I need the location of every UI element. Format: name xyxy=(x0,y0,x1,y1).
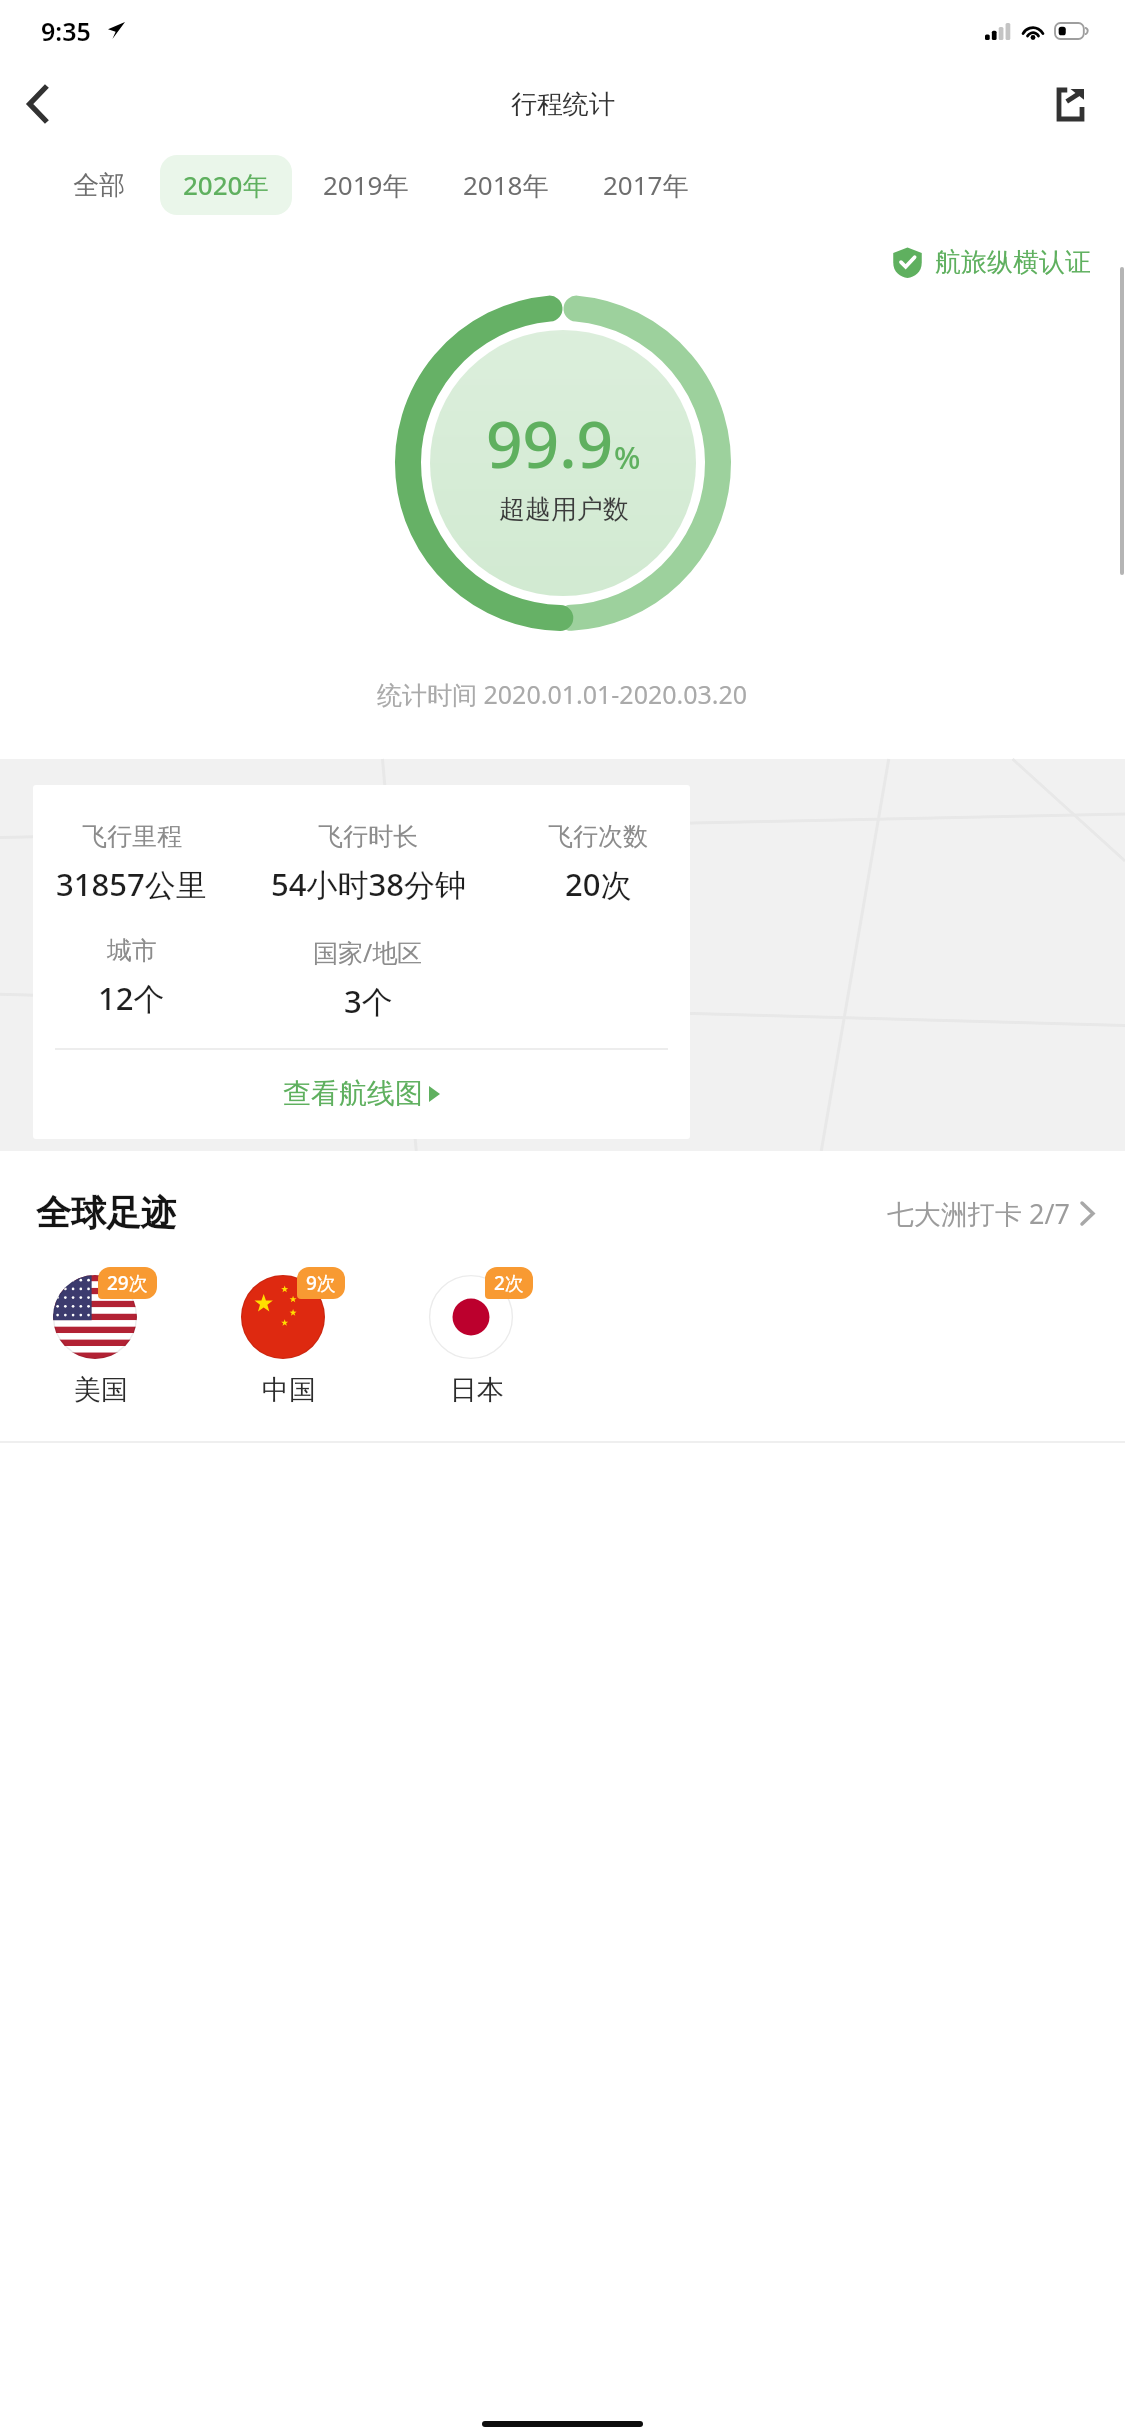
button[interactable]: 查看航线图 xyxy=(33,1076,690,1111)
button[interactable]: 29次 xyxy=(36,1267,166,1407)
button[interactable]: 分享 xyxy=(1037,71,1103,137)
button[interactable]: 航旅纵横认证 xyxy=(0,246,1091,279)
button[interactable]: 返回 xyxy=(0,66,76,142)
staticText: 飞行次数 xyxy=(548,821,648,852)
button[interactable]: 2019年 xyxy=(300,155,432,215)
staticText: % xyxy=(614,436,641,478)
staticText: 全部 xyxy=(73,169,125,202)
staticText: 2018年 xyxy=(463,167,549,203)
staticText: 超越用户数 xyxy=(499,493,629,526)
staticText: 日本 xyxy=(450,1373,504,1407)
button[interactable]: 全部 xyxy=(50,157,148,214)
staticText: 29次 xyxy=(107,1270,148,1296)
staticText: 飞行里程 xyxy=(82,821,182,852)
staticText: 统计时间 2020.01.01-2020.03.20 xyxy=(377,677,748,711)
staticText: 2020年 xyxy=(183,167,269,203)
staticText: 美国 xyxy=(74,1373,128,1407)
staticText: 国家/地区 xyxy=(313,935,423,969)
staticText: 七大洲打卡 2/7 xyxy=(887,1195,1070,1232)
button[interactable]: 七大洲打卡 2/7 xyxy=(887,1195,1095,1232)
staticText: 2017年 xyxy=(603,167,689,203)
staticText: 行程统计 xyxy=(511,88,615,121)
staticText: 20次 xyxy=(565,863,632,905)
staticText: 2019年 xyxy=(323,167,409,203)
staticText: 54小时38分钟 xyxy=(271,863,466,905)
staticText: 2次 xyxy=(494,1270,524,1296)
staticText: 31857公里 xyxy=(56,863,207,905)
staticText: 99.9 xyxy=(486,400,614,487)
staticText: 飞行时长 xyxy=(318,821,418,852)
staticText: 全球足迹 xyxy=(36,1191,176,1235)
button[interactable]: 2018年 xyxy=(440,155,572,215)
staticText: 查看航线图 xyxy=(283,1076,423,1111)
staticText: 9:35 xyxy=(41,14,91,48)
staticText: 3个 xyxy=(344,980,393,1022)
staticText: 12个 xyxy=(98,977,165,1019)
staticText: 航旅纵横认证 xyxy=(935,246,1091,279)
button[interactable]: 2017年 xyxy=(580,155,712,215)
button[interactable]: 2次 xyxy=(412,1267,542,1407)
staticText: 中国 xyxy=(262,1373,316,1407)
button[interactable]: 9次 xyxy=(224,1267,354,1407)
staticText: 9次 xyxy=(306,1270,336,1296)
staticText: 城市 xyxy=(107,935,157,966)
button[interactable]: 2020年 xyxy=(160,155,292,215)
